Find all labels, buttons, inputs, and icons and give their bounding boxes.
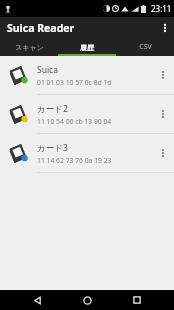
staticText: Suica (37, 64, 58, 76)
staticText: 11 14 62 73 76 0a 19 23 (37, 156, 112, 165)
button[interactable]: Suica (0, 56, 174, 94)
staticText: カード3 (37, 142, 68, 154)
staticText: 11 10 54 00 cb 13 90 04 (37, 117, 112, 126)
staticText: スキャン (15, 43, 44, 52)
button[interactable]: カード2 (0, 95, 174, 133)
staticText: カード2 (37, 103, 68, 115)
button[interactable]: CSV (116, 38, 174, 56)
button[interactable]: 履歴 (58, 38, 116, 56)
button[interactable]: Item options (152, 56, 174, 94)
button[interactable]: カード3 (0, 134, 174, 172)
button[interactable]: スキャン (0, 38, 58, 56)
staticText: 23:11 (151, 3, 172, 14)
staticText: CSV (139, 42, 152, 52)
button[interactable]: Recents (124, 290, 150, 310)
button[interactable]: Item options (152, 95, 174, 133)
button[interactable]: Back (24, 290, 50, 310)
staticText: 履歴 (80, 43, 94, 52)
button[interactable]: More options (156, 17, 174, 38)
button[interactable]: Home (74, 290, 100, 310)
button[interactable]: Item options (152, 134, 174, 172)
staticText: 01 01 03 10 57 0c 8d 1d (37, 78, 112, 87)
staticText: Suica Reader (7, 21, 75, 35)
